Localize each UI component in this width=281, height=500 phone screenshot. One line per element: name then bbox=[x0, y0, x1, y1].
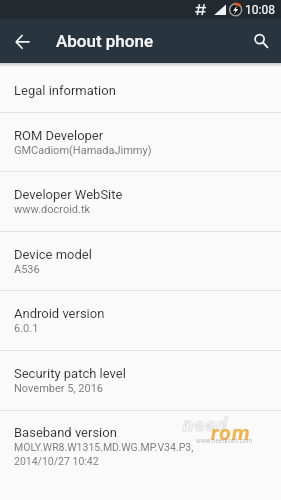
staticText: 6.0.1 bbox=[14, 322, 39, 335]
button[interactable]: Search bbox=[244, 25, 276, 57]
staticText: www.needrom.com bbox=[196, 437, 253, 445]
button[interactable]: ROM Developer bbox=[0, 113, 281, 171]
button[interactable]: Legal information bbox=[0, 63, 281, 112]
staticText: Android version bbox=[14, 306, 105, 321]
staticText: Baseband version bbox=[14, 425, 117, 440]
staticText: A536 bbox=[14, 263, 40, 276]
button[interactable]: Device model bbox=[0, 232, 281, 290]
button[interactable]: Developer WebSite bbox=[0, 172, 281, 231]
staticText: ROM Developer bbox=[14, 128, 104, 143]
staticText: Security patch level bbox=[14, 366, 126, 381]
staticText: GMCadiom(HamadaJimmy) bbox=[14, 144, 152, 157]
staticText: rom bbox=[211, 421, 251, 446]
button[interactable]: Security patch level bbox=[0, 351, 281, 410]
staticText: www.docroid.tk bbox=[14, 203, 91, 216]
staticText: need bbox=[183, 413, 229, 435]
button[interactable]: Back bbox=[6, 25, 38, 57]
staticText: November 5, 2016 bbox=[14, 382, 104, 395]
staticText: Developer WebSite bbox=[14, 187, 123, 202]
staticText: Device model bbox=[14, 247, 92, 262]
button[interactable]: Baseband version bbox=[0, 411, 281, 481]
staticText: 10:08 bbox=[245, 3, 275, 17]
staticText: Legal information bbox=[14, 83, 116, 98]
staticText: MOLY.WR8.W1315.MD.WG.MP.V34.P3, 2014/10/… bbox=[14, 441, 194, 467]
button[interactable]: Android version bbox=[0, 291, 281, 350]
staticText: About phone bbox=[56, 31, 154, 51]
